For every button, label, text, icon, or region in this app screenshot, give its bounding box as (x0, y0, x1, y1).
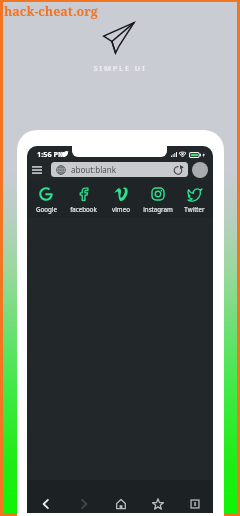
button[interactable]: Google (27, 180, 65, 218)
staticText: Twitter (184, 205, 205, 213)
button[interactable]: Profile (192, 162, 208, 178)
staticText: vimeo (112, 205, 130, 213)
staticText: Google (36, 205, 57, 213)
button[interactable]: Bookmarks (139, 480, 176, 513)
button[interactable]: Twitter (176, 180, 213, 218)
button[interactable]: Back (27, 480, 65, 513)
button[interactable]: Home (102, 480, 139, 513)
staticText: facebook (70, 205, 97, 213)
button[interactable]: vimeo (102, 180, 139, 218)
button[interactable]: Menu (28, 162, 46, 178)
button[interactable]: Tabs (176, 480, 213, 513)
button[interactable]: facebook (65, 180, 102, 218)
button[interactable]: about:blank (51, 162, 188, 177)
button[interactable]: Forward (65, 480, 102, 513)
button[interactable]: instagram (139, 180, 176, 218)
staticText: 1:56 PM (37, 149, 65, 159)
staticText: hack-cheat.org (4, 3, 98, 20)
staticText: instagram (143, 205, 173, 213)
staticText: SIMPLE UI (3, 63, 237, 73)
staticText: about:blank (71, 164, 116, 175)
